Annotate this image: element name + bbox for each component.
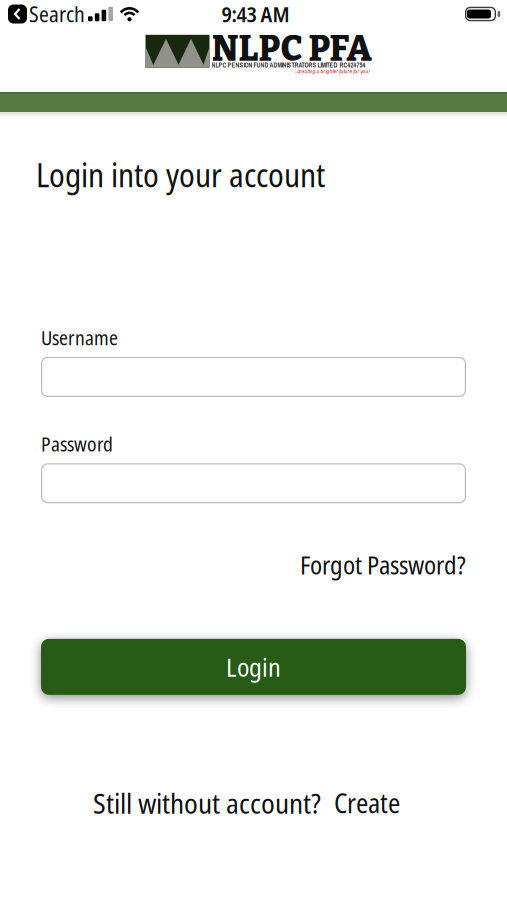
staticText: Forgot Password? — [300, 548, 466, 582]
staticText: Password — [41, 431, 113, 457]
button[interactable]: Back to Search — [8, 0, 85, 29]
staticText: Create — [334, 785, 400, 821]
staticText: Login into your account — [36, 153, 325, 197]
staticText: 9:43 AM — [221, 0, 289, 29]
staticText: NLPC PFA — [211, 28, 371, 70]
button[interactable]: Create — [334, 785, 400, 821]
staticText: NLPC PENSION FUND ADMINISTRATORS LIMITED… — [211, 61, 365, 69]
staticText: ...creating a brighter future for you! — [294, 67, 369, 75]
staticText: Still without account? — [93, 784, 321, 822]
button[interactable]: Password — [41, 463, 466, 503]
staticText: Username — [41, 325, 118, 351]
button[interactable]: Username — [41, 357, 466, 397]
button[interactable]: Login — [41, 639, 466, 695]
button[interactable]: Forgot Password? — [300, 548, 466, 582]
staticText: Search — [29, 0, 85, 29]
staticText: Login — [226, 650, 281, 684]
